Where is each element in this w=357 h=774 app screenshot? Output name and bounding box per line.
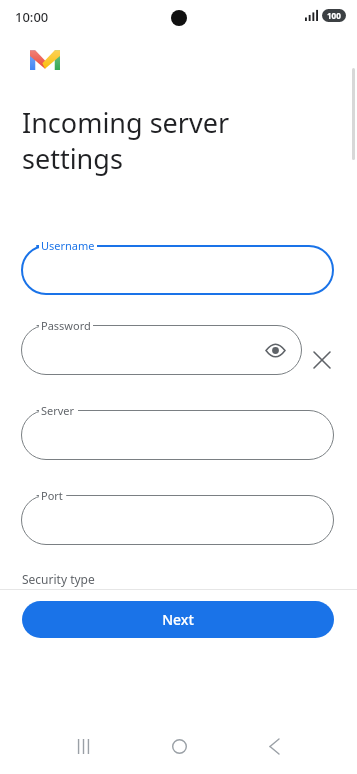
staticText: Security type (22, 571, 95, 587)
staticText: Incoming server settings (22, 104, 230, 177)
staticText: Password (41, 318, 91, 333)
staticText: 100 (327, 10, 341, 21)
button[interactable]: Recents (63, 734, 103, 758)
button[interactable]: Password (21, 325, 302, 375)
button[interactable]: Next (22, 601, 334, 638)
staticText: Port (41, 488, 63, 503)
button[interactable]: Username (21, 245, 334, 295)
button[interactable]: Home (159, 734, 199, 758)
staticText: Next (162, 610, 194, 629)
staticText: 10:00 (15, 8, 49, 26)
button[interactable]: Port (21, 495, 334, 545)
button[interactable]: Back (254, 734, 294, 758)
button[interactable]: Server (21, 410, 334, 460)
button[interactable]: Clear password (307, 345, 337, 375)
staticText: Server (41, 403, 75, 418)
staticText: Username (41, 238, 95, 253)
button[interactable]: Show password (262, 337, 288, 363)
